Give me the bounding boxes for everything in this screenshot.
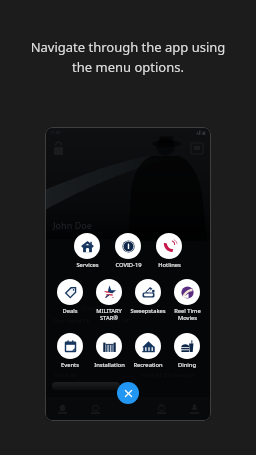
staticText: 11:05 xyxy=(50,130,61,135)
button[interactable]: Close menu xyxy=(117,382,139,404)
button[interactable]: Installation xyxy=(90,333,128,369)
staticText: Hotlines xyxy=(158,261,181,269)
staticText: Events xyxy=(61,361,79,369)
button[interactable]: Events xyxy=(51,333,89,369)
staticText: Quantity xyxy=(81,305,102,312)
button[interactable]: COVID-19 xyxy=(109,233,147,269)
button[interactable]: Hotlines xyxy=(150,233,188,269)
staticText: John Doe xyxy=(53,219,92,231)
staticText: Reel Time Movies xyxy=(174,307,201,322)
staticText: Sweepstakes xyxy=(130,307,166,315)
button[interactable]: Sweepstakes xyxy=(129,279,167,315)
staticText: Navigate through the app using the menu … xyxy=(0,38,256,76)
button[interactable]: Deals xyxy=(51,279,89,315)
button[interactable]: More xyxy=(178,397,211,421)
staticText: Add to cart xyxy=(105,317,131,324)
staticText: Installation xyxy=(94,361,125,369)
button[interactable]: Dining xyxy=(168,333,206,369)
staticText: Services xyxy=(76,261,99,269)
button[interactable]: Cart xyxy=(145,397,178,421)
button[interactable]: Services xyxy=(68,233,106,269)
staticText: ▲▌▆ xyxy=(196,130,206,135)
staticText: Dining xyxy=(178,361,196,369)
staticText: COVID-19 xyxy=(115,261,142,269)
button[interactable]: Reel Time Movies xyxy=(168,279,206,322)
button[interactable]: Scan xyxy=(112,397,145,421)
staticText: MILITARY STAR® xyxy=(96,307,122,322)
button[interactable]: MILITARY STAR® xyxy=(90,279,128,322)
button[interactable]: Shop xyxy=(79,397,112,421)
staticText: Deals xyxy=(62,307,78,315)
button[interactable]: Home xyxy=(45,397,79,421)
button[interactable]: Recreation xyxy=(129,333,167,369)
staticText: Recreation xyxy=(133,361,163,369)
